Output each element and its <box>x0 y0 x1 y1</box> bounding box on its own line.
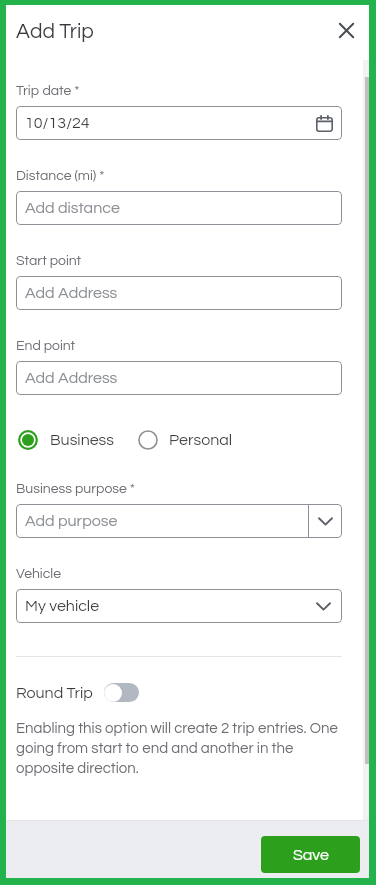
button[interactable]: Add purpose <box>16 504 342 538</box>
button[interactable]: My vehicle <box>16 589 342 623</box>
button[interactable]: Business <box>18 430 115 450</box>
staticText: Add distance <box>25 200 120 216</box>
staticText: 10/13/24 <box>25 115 90 131</box>
button[interactable]: Add Address <box>16 276 342 310</box>
button[interactable]: Close <box>332 16 360 44</box>
staticText: Personal <box>169 432 233 448</box>
staticText: Add Address <box>25 285 118 301</box>
staticText: Add Trip <box>16 21 94 43</box>
button[interactable]: Add distance <box>16 191 342 225</box>
button[interactable]: 10/13/24 <box>16 106 342 140</box>
staticText: Distance (mi) * <box>16 169 105 183</box>
staticText: Add Address <box>25 370 118 386</box>
staticText: Business <box>50 432 115 448</box>
button[interactable]: Personal <box>138 430 233 450</box>
staticText: Business purpose * <box>16 482 136 496</box>
staticText: Vehicle <box>16 567 62 581</box>
staticText: End point <box>16 339 76 353</box>
staticText: Start point <box>16 254 82 268</box>
button[interactable]: Round Trip toggle <box>104 683 139 702</box>
staticText: My vehicle <box>25 598 100 614</box>
staticText: Trip date * <box>16 84 80 98</box>
staticText: Round Trip <box>16 685 93 701</box>
button[interactable]: Add Address <box>16 361 342 395</box>
button[interactable]: Save <box>261 836 360 873</box>
staticText: Enabling this option will create 2 trip … <box>16 721 342 776</box>
staticText: Save <box>293 847 329 863</box>
staticText: Add purpose <box>25 513 118 529</box>
